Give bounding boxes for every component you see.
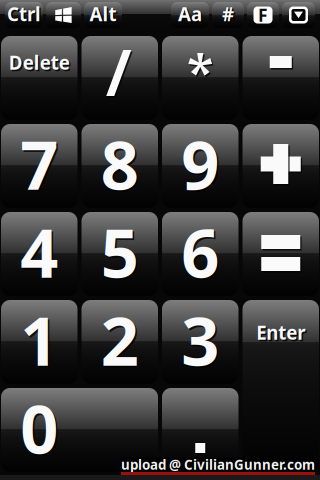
staticText: Alt — [89, 2, 116, 26]
button[interactable]: 1 — [1, 300, 77, 384]
staticText: 9 — [181, 120, 219, 208]
button[interactable]: Find — [247, 2, 279, 28]
staticText: 8 — [102, 121, 140, 210]
button[interactable]: 8 — [81, 124, 158, 208]
staticText: Enter — [258, 322, 307, 346]
staticText: 1 — [20, 296, 58, 384]
button[interactable] — [162, 388, 238, 472]
button[interactable]: Ctrl — [5, 2, 43, 28]
button[interactable] — [162, 36, 238, 120]
staticText: Aa — [179, 3, 203, 28]
staticText: 5 — [101, 208, 139, 296]
button[interactable]: 6 — [162, 212, 238, 296]
button[interactable]: 2 — [81, 300, 158, 384]
staticText: Enter — [256, 320, 305, 345]
staticText: Ctrl — [7, 2, 41, 26]
button[interactable] — [242, 124, 319, 208]
staticText: 4 — [20, 208, 58, 296]
staticText: 2 — [102, 297, 140, 386]
button[interactable]: Alt — [84, 2, 122, 28]
staticText: upload @ CivilianGunner.com — [121, 456, 315, 473]
staticText: # — [223, 3, 235, 28]
button[interactable]: 4 — [1, 212, 77, 296]
staticText: Ctrl — [8, 3, 42, 28]
button[interactable]: Enter — [242, 300, 319, 472]
button[interactable]: Delete — [1, 36, 77, 120]
staticText: 6 — [183, 209, 221, 298]
staticText: 3 — [183, 297, 221, 386]
staticText: 2 — [101, 296, 139, 384]
button[interactable]: 3 — [162, 300, 238, 384]
staticText: 0 — [22, 385, 60, 474]
button[interactable] — [242, 212, 319, 296]
staticText: 4 — [22, 209, 60, 298]
button[interactable]: 7 — [1, 124, 77, 208]
staticText: Delete — [9, 50, 70, 75]
button[interactable]: 9 — [162, 124, 238, 208]
staticText: 6 — [181, 208, 219, 296]
staticText: F — [258, 3, 268, 26]
staticText: 8 — [101, 120, 139, 208]
staticText: 0 — [20, 384, 58, 472]
staticText: 5 — [102, 209, 140, 298]
staticText: Alt — [91, 3, 118, 28]
staticText: # — [222, 2, 234, 26]
button[interactable]: Hide keyboard — [282, 2, 315, 28]
button[interactable]: Aa — [171, 2, 209, 28]
button[interactable]: 5 — [81, 212, 158, 296]
button[interactable] — [242, 36, 319, 120]
staticText: 9 — [183, 121, 221, 210]
staticText: 1 — [22, 297, 60, 386]
button[interactable]: # — [212, 2, 244, 28]
button[interactable] — [81, 36, 158, 120]
staticText: 7 — [22, 121, 60, 210]
staticText: Delete — [10, 52, 71, 76]
button[interactable]: Windows key — [46, 2, 81, 28]
staticText: 3 — [181, 296, 219, 384]
staticText: 7 — [20, 120, 58, 208]
button[interactable]: 0 — [1, 388, 158, 472]
staticText: Aa — [178, 2, 202, 26]
